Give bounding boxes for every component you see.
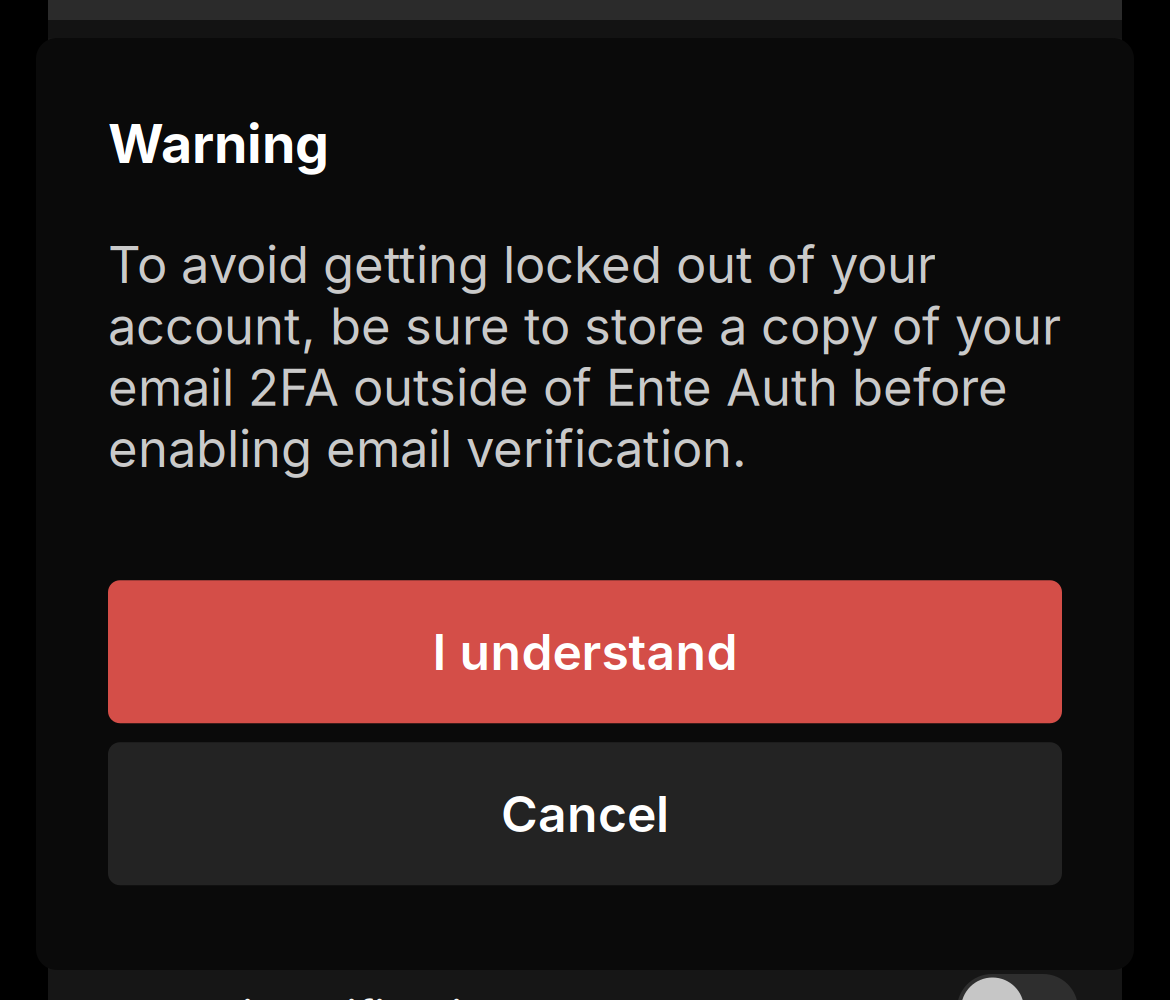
button[interactable]: I understand <box>108 580 1062 723</box>
staticText: Cancel <box>501 784 669 844</box>
button[interactable]: Cancel <box>108 742 1062 885</box>
staticText: To avoid getting locked out of your acco… <box>108 234 1061 479</box>
staticText: Email verification <box>150 989 516 1000</box>
staticText: I understand <box>432 622 737 682</box>
staticText: Warning <box>108 111 329 176</box>
button[interactable]: Email verification <box>48 951 1122 1000</box>
